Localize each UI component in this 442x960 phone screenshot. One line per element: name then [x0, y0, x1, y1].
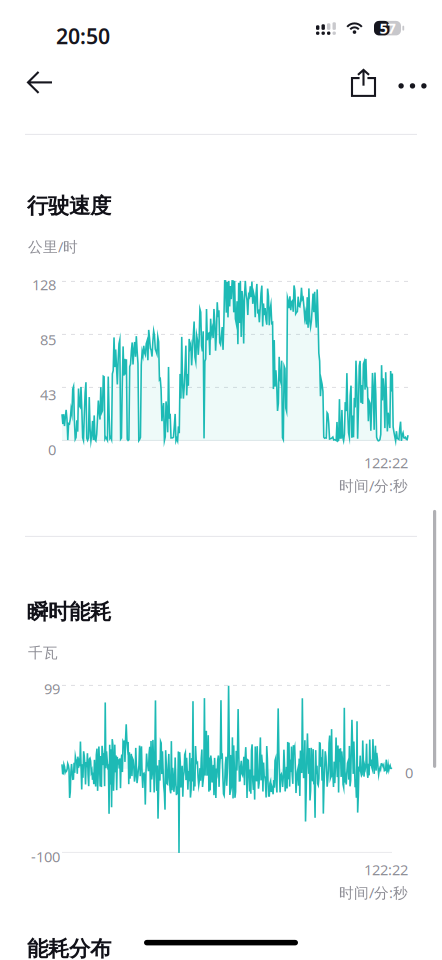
staticText: 时间/分:秒 — [339, 476, 408, 495]
staticText: -100 — [31, 847, 60, 866]
button[interactable]: Back — [18, 60, 62, 105]
staticText: 公里/时 — [28, 237, 78, 256]
staticText: 43 — [40, 385, 56, 404]
button[interactable]: More — [389, 63, 436, 109]
staticText: 瞬时能耗 — [27, 599, 111, 625]
staticText: 0 — [405, 763, 413, 782]
button[interactable]: Share — [343, 60, 384, 105]
staticText: 122:22 — [364, 860, 408, 879]
staticText: 时间/分:秒 — [339, 883, 408, 902]
staticText: 99 — [44, 679, 60, 698]
staticText: 57 — [379, 18, 395, 38]
staticText: 0 — [48, 440, 56, 459]
staticText: 行驶速度 — [27, 193, 111, 219]
staticText: 128 — [32, 275, 56, 294]
staticText: 千瓦 — [28, 644, 58, 662]
staticText: 20:50 — [56, 22, 110, 50]
staticText: 85 — [40, 330, 56, 349]
staticText: 能耗分布 — [27, 936, 111, 960]
staticText: 122:22 — [364, 453, 408, 472]
